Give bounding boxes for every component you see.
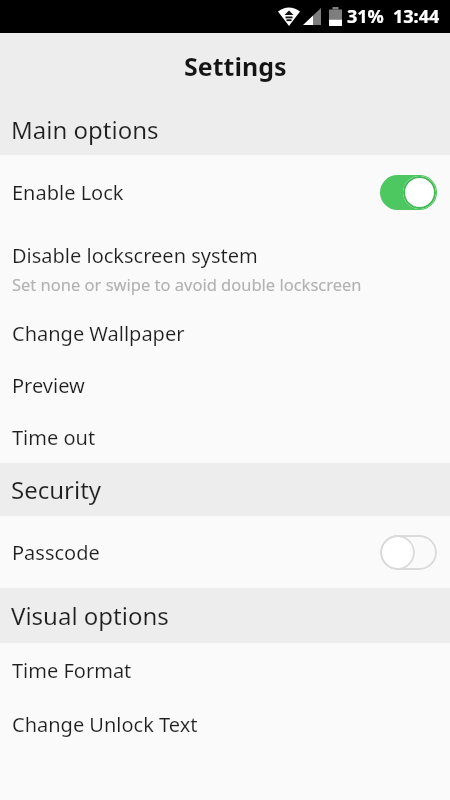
staticText: Settings — [184, 49, 287, 83]
button[interactable]: Time out — [0, 411, 450, 463]
button[interactable]: Time Format — [0, 643, 450, 697]
staticText: Visual options — [11, 599, 169, 632]
staticText: Change Unlock Text — [12, 711, 198, 738]
button[interactable]: Disable lockscreen system — [0, 230, 450, 307]
button[interactable]: Preview — [0, 359, 450, 411]
staticText: Time Format — [12, 657, 132, 684]
staticText: Set none or swipe to avoid double locksc… — [12, 273, 362, 295]
button[interactable]: Change Wallpaper — [0, 307, 450, 359]
staticText: Change Wallpaper — [12, 320, 185, 347]
staticText: 31% — [347, 4, 384, 29]
staticText: Passcode — [12, 539, 380, 566]
staticText: Enable Lock — [12, 179, 380, 206]
button[interactable]: Change Unlock Text — [0, 697, 450, 751]
staticText: Disable lockscreen system — [12, 242, 258, 269]
button[interactable]: Enable Lock — [0, 155, 450, 230]
staticText: Main options — [11, 113, 159, 146]
button[interactable]: Passcode — [0, 516, 450, 588]
staticText: Security — [11, 473, 102, 506]
staticText: Preview — [12, 372, 85, 399]
staticText: 13:44 — [393, 4, 440, 29]
staticText: Time out — [12, 424, 96, 451]
